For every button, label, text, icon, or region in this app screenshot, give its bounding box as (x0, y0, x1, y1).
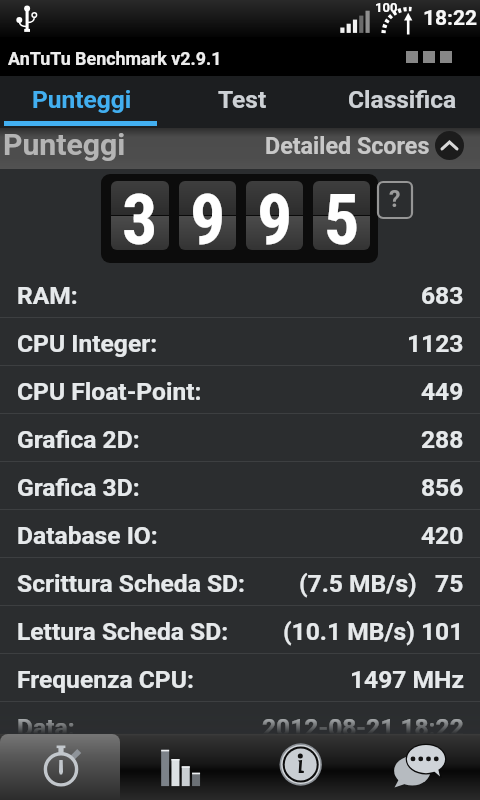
button[interactable]: Scrittura Scheda SD: (0, 558, 480, 606)
button[interactable]: Benchmark (0, 734, 120, 800)
button[interactable]: CPU Float-Point: (0, 366, 480, 414)
button[interactable]: Detailed Scores (265, 128, 464, 169)
staticText: Lettura Scheda SD: (17, 617, 229, 646)
button[interactable]: Data: (0, 702, 480, 750)
staticText: CPU Integer: (17, 329, 158, 358)
button[interactable]: RAM: (0, 270, 480, 318)
staticText: Database IO: (17, 521, 158, 550)
button[interactable]: Grafica 3D: (0, 462, 480, 510)
staticText: 100 (375, 0, 398, 15)
button[interactable]: Test (160, 76, 320, 128)
staticText: 18:22 (423, 6, 478, 31)
button[interactable]: Chat (360, 734, 480, 800)
button[interactable]: Database IO: (0, 510, 480, 558)
staticText: 9 (190, 181, 226, 248)
staticText: AnTuTu Benchmark v2.9.1 (8, 48, 222, 69)
staticText: Grafica 3D: (17, 473, 140, 502)
staticText: Punteggi (32, 85, 132, 114)
staticText: 420 (421, 521, 464, 550)
staticText: ? (389, 186, 401, 213)
staticText: CPU Float-Point: (17, 377, 202, 406)
button[interactable]: Menu (406, 51, 452, 63)
button[interactable]: Lettura Scheda SD: (0, 606, 480, 654)
staticText: 1497 MHz (350, 665, 464, 694)
button[interactable]: Info (240, 734, 360, 800)
staticText: 2012-08-21 18:22 (262, 713, 464, 742)
staticText: Punteggi (3, 127, 126, 162)
staticText: Detailed Scores (265, 132, 430, 159)
staticText: 9 (257, 181, 293, 248)
button[interactable]: Punteggi (0, 76, 160, 128)
staticText: 856 (421, 473, 464, 502)
staticText: Frequenza CPU: (17, 665, 194, 694)
staticText: 5 (324, 181, 360, 248)
button[interactable]: Scores (120, 734, 240, 800)
button[interactable]: Classifica (320, 76, 480, 128)
staticText: (7.5 MB/s) 75 (299, 569, 464, 598)
staticText: 3 (122, 181, 158, 248)
button[interactable]: CPU Integer: (0, 318, 480, 366)
button[interactable]: Grafica 2D: (0, 414, 480, 462)
staticText: 1123 (407, 329, 464, 358)
button[interactable]: Frequenza CPU: (0, 654, 480, 702)
staticText: 288 (421, 425, 464, 454)
staticText: Test (218, 85, 267, 114)
staticText: Scrittura Scheda SD: (17, 569, 245, 598)
staticText: 449 (421, 377, 464, 406)
staticText: Data: (17, 713, 75, 742)
staticText: Grafica 2D: (17, 425, 140, 454)
staticText: 683 (421, 281, 464, 310)
staticText: (10.1 MB/s) 101 (283, 617, 464, 646)
staticText: Classifica (348, 85, 457, 114)
staticText: RAM: (17, 281, 78, 310)
button[interactable]: Help (378, 182, 412, 218)
